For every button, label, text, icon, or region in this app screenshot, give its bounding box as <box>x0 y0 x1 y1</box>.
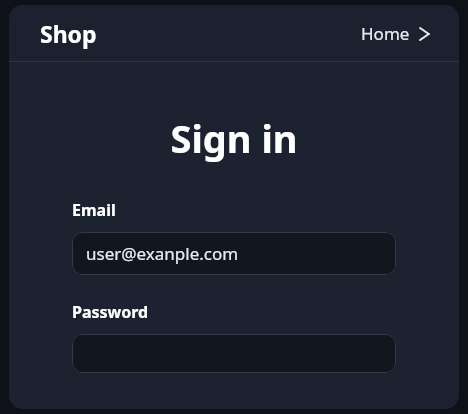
button[interactable]: Home <box>357 18 435 49</box>
staticText: Home <box>361 22 410 45</box>
button[interactable]: Shop <box>40 18 97 49</box>
staticText: Password <box>72 301 149 323</box>
staticText: Email <box>72 199 116 221</box>
other: Go to Home <box>417 24 431 44</box>
button[interactable]: user@exanple.com <box>72 232 396 275</box>
staticText: Sign in <box>72 112 396 164</box>
staticText: user@exanple.com <box>86 242 239 265</box>
button[interactable]: Password field <box>72 334 396 373</box>
